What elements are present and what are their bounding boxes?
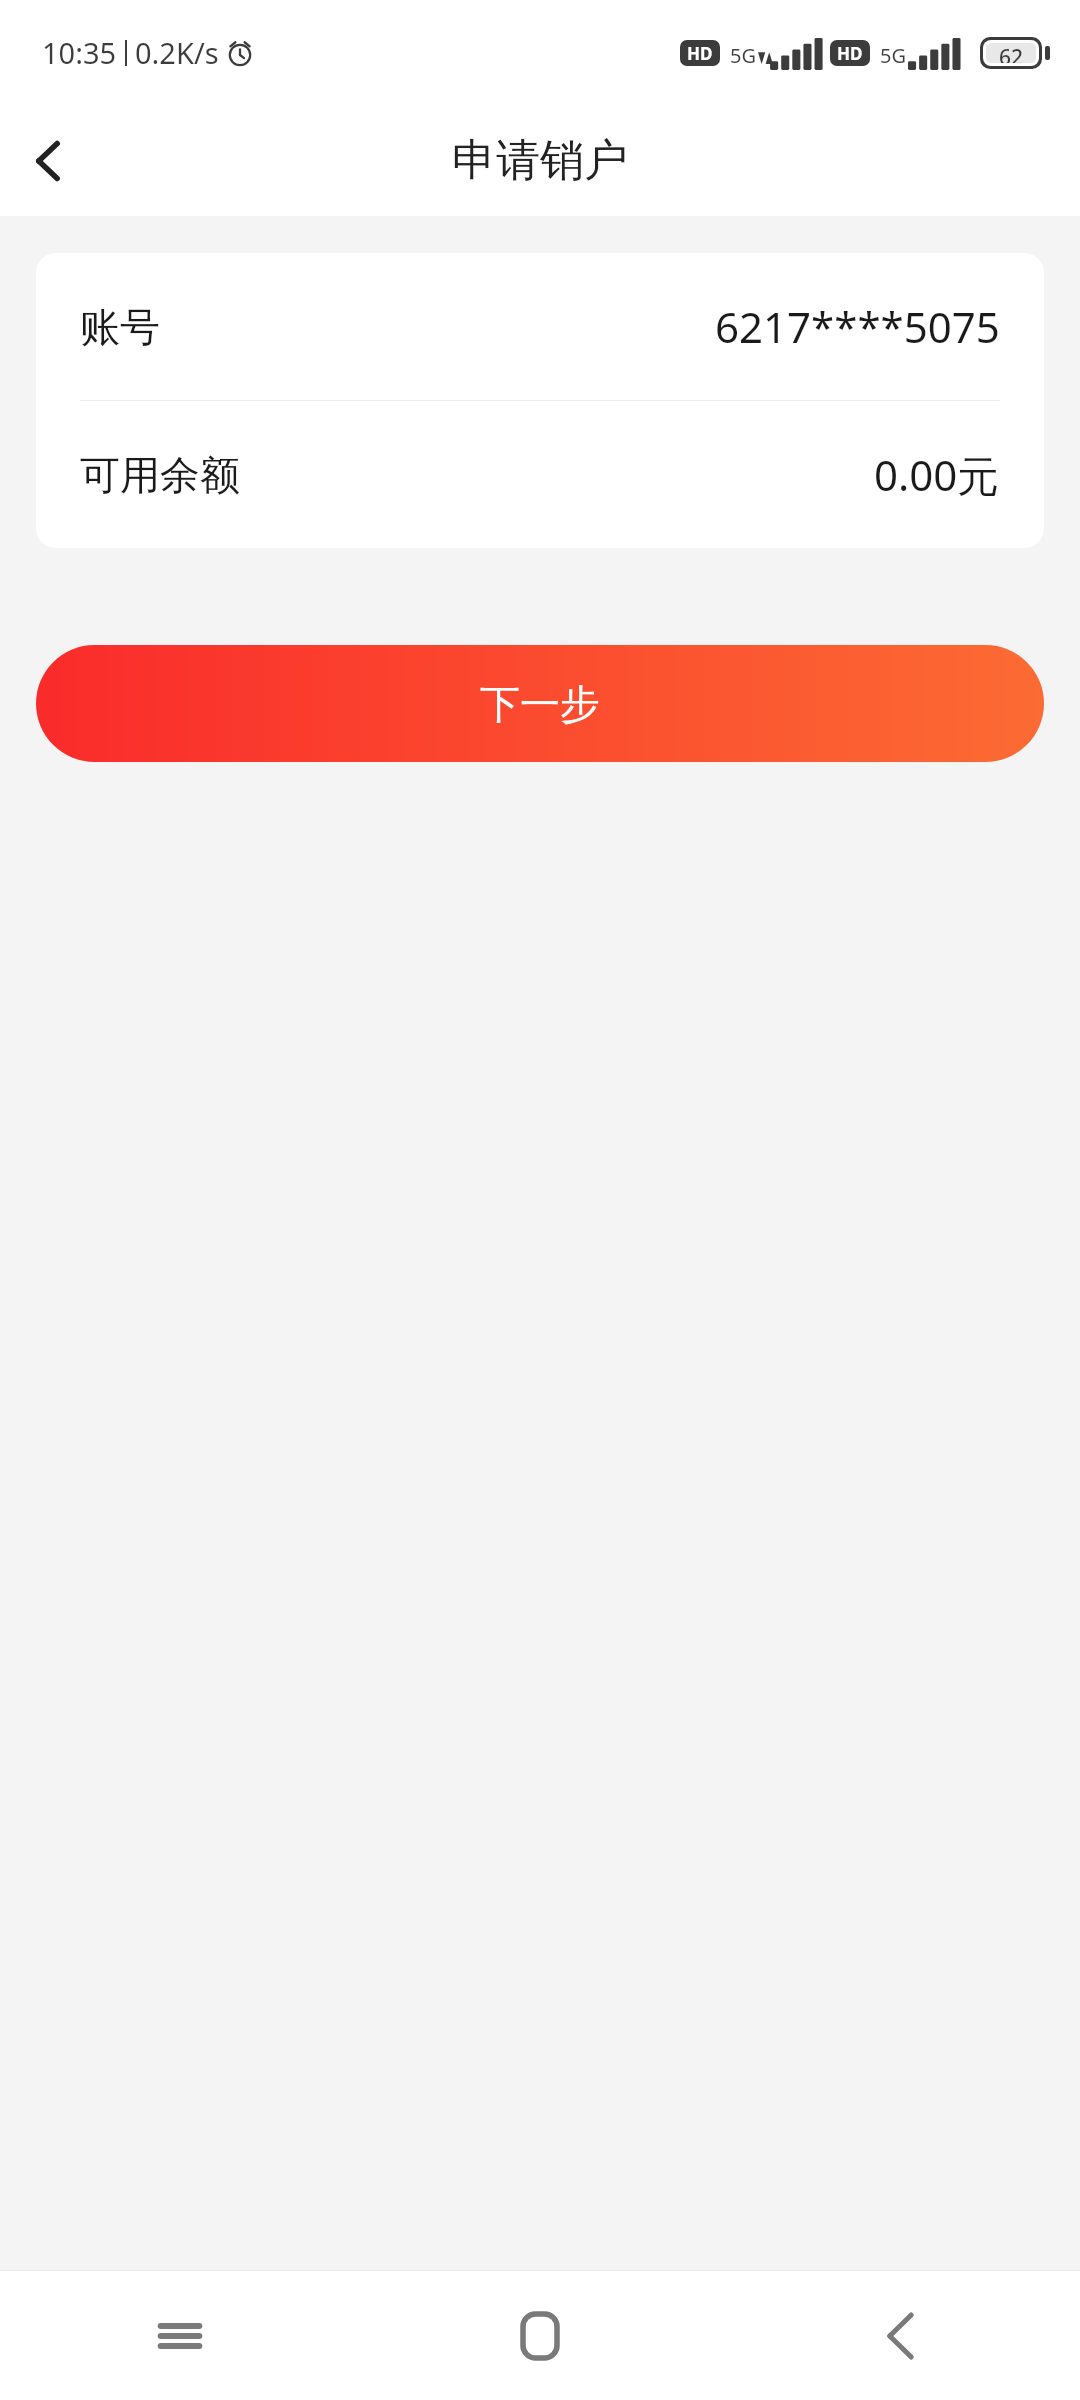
staticText: 5G — [880, 42, 906, 69]
button[interactable]: 账号 — [36, 253, 1044, 400]
button[interactable]: Recent apps — [0, 2271, 360, 2400]
staticText: 0.2K/s — [135, 33, 219, 72]
staticText: 申请销户 — [452, 133, 628, 188]
staticText: 62 — [999, 43, 1024, 63]
staticText: 账号 — [80, 302, 160, 352]
staticText: 下一步 — [480, 679, 600, 729]
staticText: 6217****5075 — [715, 298, 1000, 355]
button[interactable]: 下一步 — [36, 645, 1044, 762]
staticText: HD — [837, 42, 863, 65]
staticText: 5G — [730, 42, 756, 69]
button[interactable]: 可用余额 — [36, 401, 1044, 548]
button[interactable]: Home — [360, 2271, 720, 2400]
staticText: HD — [687, 42, 713, 65]
staticText: 0.00元 — [874, 446, 1000, 503]
button[interactable]: Back — [720, 2271, 1080, 2400]
button[interactable]: Back — [0, 113, 96, 209]
staticText: 可用余额 — [80, 450, 240, 500]
staticText: 10:35 — [42, 33, 117, 72]
